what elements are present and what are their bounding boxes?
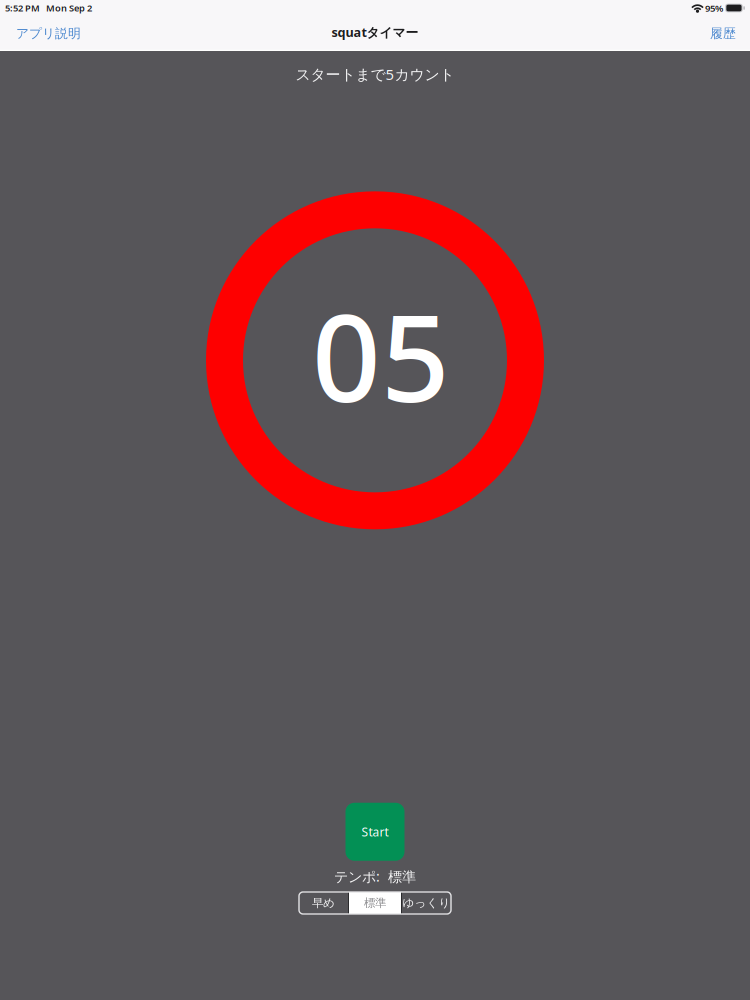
staticText: Start [361,824,388,840]
staticText: 5:52 PM [5,2,40,14]
staticText: Mon Sep 2 [40,2,92,14]
staticText: ゆっくり [402,896,450,910]
staticText: 早め [312,896,335,910]
staticText: アプリ説明 [16,25,81,41]
button[interactable]: アプリ説明 [12,18,85,49]
button[interactable]: 標準 [349,892,401,914]
button[interactable]: Start [345,803,404,861]
button[interactable]: 履歴 [706,18,740,49]
staticText: squatタイマー [331,23,418,41]
staticText: 95% [703,1,725,15]
staticText: 標準 [364,896,386,910]
button[interactable]: ゆっくり [402,892,451,914]
staticText: スタートまで5カウント [295,64,454,84]
staticText: 履歴 [710,25,736,41]
staticText: テンポ: 標準 [334,867,416,886]
button[interactable]: 早め [299,892,348,914]
staticText: 05 [312,274,450,437]
